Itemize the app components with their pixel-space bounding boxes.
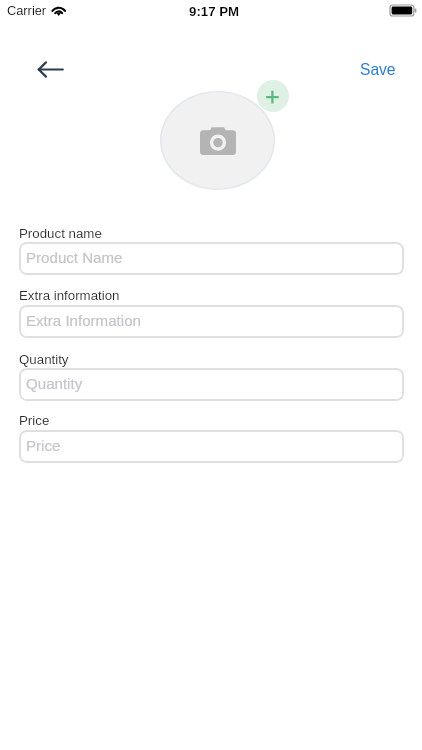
staticText: Price	[19, 413, 50, 428]
staticText: Carrier	[7, 3, 47, 17]
staticText: Product name	[19, 226, 102, 241]
staticText: Extra Information	[26, 312, 141, 329]
staticText: Extra information	[19, 288, 120, 303]
button[interactable]: Price	[19, 430, 404, 463]
button[interactable]: Product Name	[19, 242, 404, 275]
staticText: Price	[26, 437, 61, 454]
button[interactable]: Add photo	[160, 91, 275, 190]
button[interactable]: Back	[26, 53, 74, 85]
staticText: Quantity	[26, 375, 83, 392]
staticText: Product Name	[26, 249, 123, 266]
button[interactable]: Add	[257, 80, 289, 112]
staticText: 9:17 PM	[3, 4, 422, 19]
staticText: Quantity	[19, 352, 69, 367]
button[interactable]: Quantity	[19, 368, 404, 401]
button[interactable]: Extra Information	[19, 305, 404, 338]
staticText: Save	[360, 61, 396, 78]
button[interactable]: Save	[352, 55, 404, 83]
